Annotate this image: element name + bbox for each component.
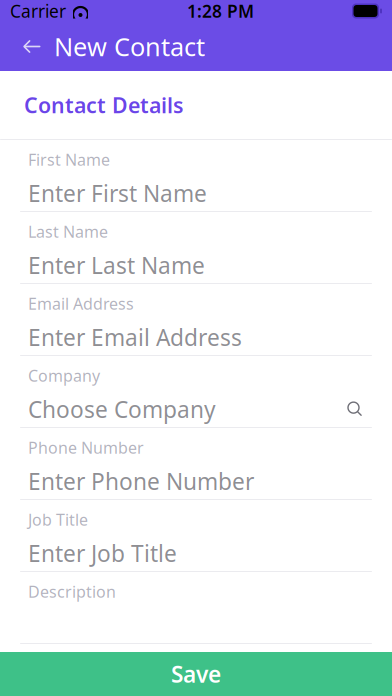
- button[interactable]: Last Name: [0, 212, 392, 284]
- staticText: Description: [28, 581, 116, 602]
- button[interactable]: Job Title: [0, 500, 392, 572]
- button[interactable]: Back: [0, 22, 54, 71]
- button[interactable]: Save: [0, 652, 392, 696]
- staticText: Contact Details: [24, 91, 184, 119]
- staticText: Company: [28, 365, 100, 386]
- button[interactable]: Phone Number: [0, 428, 392, 500]
- staticText: Save: [171, 659, 221, 689]
- button[interactable]: Email Address: [0, 284, 392, 356]
- button[interactable]: New Contact: [54, 22, 205, 71]
- staticText: Enter Job Title: [28, 538, 177, 568]
- staticText: Enter Email Address: [28, 322, 242, 352]
- staticText: Enter Phone Number: [28, 466, 254, 496]
- button[interactable]: Description: [0, 572, 392, 644]
- staticText: New Contact: [54, 30, 205, 63]
- button[interactable]: Company: [0, 356, 392, 428]
- staticText: Job Title: [28, 509, 88, 530]
- staticText: Email Address: [28, 293, 134, 314]
- staticText: Carrier: [10, 0, 66, 22]
- staticText: Enter Last Name: [28, 250, 205, 280]
- staticText: Last Name: [28, 221, 108, 242]
- staticText: Choose Company: [28, 394, 216, 424]
- button[interactable]: First Name: [0, 140, 392, 212]
- staticText: 1:28 PM: [187, 0, 254, 22]
- staticText: First Name: [28, 149, 110, 170]
- staticText: Phone Number: [28, 437, 144, 458]
- staticText: Enter First Name: [28, 178, 207, 208]
